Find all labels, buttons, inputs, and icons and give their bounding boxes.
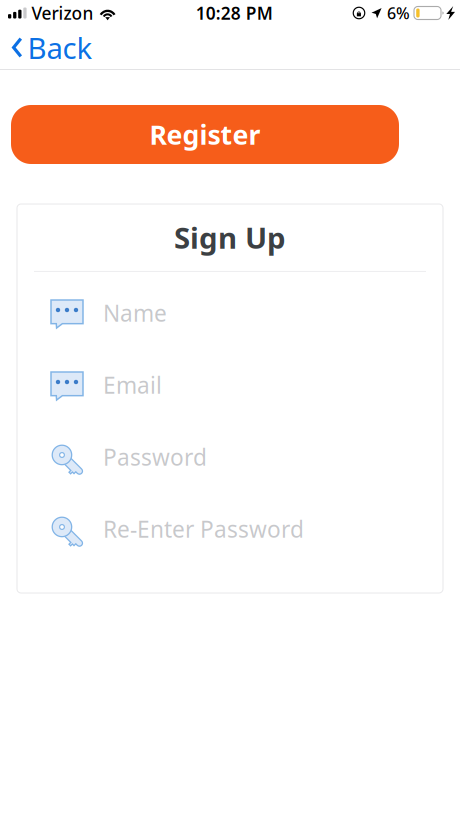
staticText: Name xyxy=(103,298,167,328)
button[interactable]: Re-Enter Password xyxy=(51,514,409,548)
staticText: Back xyxy=(27,28,92,67)
staticText: Verizon xyxy=(32,1,94,24)
staticText: 10:28 PM xyxy=(196,1,273,24)
button[interactable]: Name xyxy=(51,298,409,332)
staticText: Register xyxy=(149,117,260,152)
button[interactable]: Back xyxy=(0,26,102,69)
staticText: Email xyxy=(103,370,162,400)
staticText: Sign Up xyxy=(174,218,286,257)
button[interactable]: Register xyxy=(11,105,399,164)
staticText: Re-Enter Password xyxy=(103,514,304,544)
button[interactable]: Email xyxy=(51,370,409,404)
staticText: 6% xyxy=(387,2,410,24)
button[interactable]: Password xyxy=(51,442,409,476)
staticText: Password xyxy=(103,442,207,472)
